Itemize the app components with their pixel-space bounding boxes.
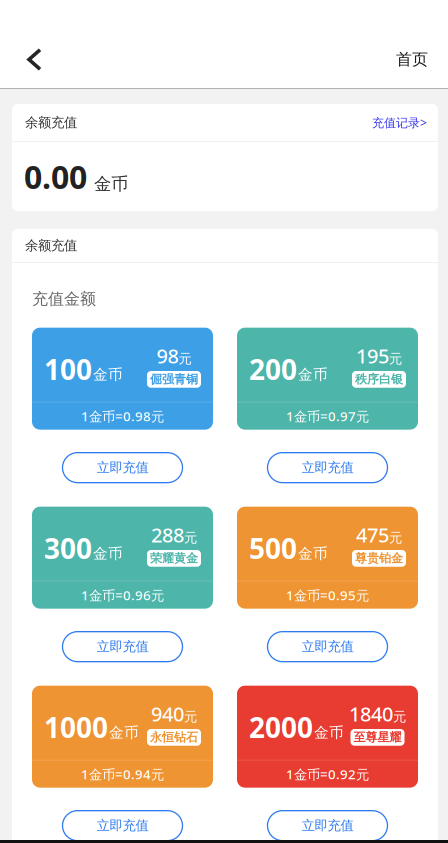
staticText: 金币 <box>93 366 123 384</box>
button[interactable]: 立即充值 <box>62 453 182 483</box>
staticText: 1金币=0.94元 <box>81 765 164 783</box>
button[interactable]: 立即充值 <box>267 453 387 483</box>
staticText: 立即充值 <box>301 638 353 655</box>
staticText: 金币 <box>93 545 123 563</box>
button[interactable]: 立即充值 <box>267 811 387 841</box>
button[interactable]: 立即充值 <box>62 632 182 662</box>
staticText: 1金币=0.92元 <box>286 765 369 783</box>
staticText: 金币 <box>94 173 128 195</box>
staticText: 金币 <box>298 366 328 384</box>
staticText: 尊贵铂金 <box>355 551 403 566</box>
staticText: 元 <box>184 709 197 725</box>
staticText: 1840 <box>349 700 393 727</box>
button[interactable]: 立即充值 <box>62 811 182 841</box>
staticText: 立即充值 <box>96 817 148 834</box>
button[interactable]: Back <box>0 37 61 88</box>
staticText: 1000 <box>44 709 108 746</box>
staticText: 永恒钻石 <box>150 730 198 745</box>
staticText: 1金币=0.95元 <box>286 586 369 604</box>
staticText: 立即充值 <box>96 638 148 655</box>
staticText: 1金币=0.97元 <box>286 407 369 425</box>
staticText: 2000 <box>249 709 313 746</box>
staticText: 元 <box>184 530 197 546</box>
staticText: 立即充值 <box>96 459 148 476</box>
button[interactable]: 立即充值 <box>267 632 387 662</box>
staticText: 288 <box>151 521 184 548</box>
staticText: 475 <box>356 521 389 548</box>
staticText: 100 <box>44 351 92 388</box>
button[interactable]: 首页 <box>396 36 448 89</box>
staticText: 倔强青铜 <box>150 372 198 387</box>
staticText: 98 <box>156 342 178 369</box>
staticText: 余额充值 <box>25 114 77 131</box>
staticText: 立即充值 <box>301 459 353 476</box>
staticText: 500 <box>249 530 297 567</box>
staticText: 元 <box>178 351 191 367</box>
staticText: 200 <box>249 351 297 388</box>
staticText: 元 <box>393 709 406 725</box>
button[interactable]: 充值记录> <box>372 114 427 130</box>
staticText: 充值金额 <box>32 289 96 309</box>
staticText: 立即充值 <box>301 817 353 834</box>
staticText: 首页 <box>396 50 428 69</box>
staticText: 0.00 <box>24 155 87 198</box>
staticText: 秩序白银 <box>355 372 403 387</box>
staticText: 金币 <box>109 724 139 742</box>
staticText: 300 <box>44 530 92 567</box>
staticText: 940 <box>151 700 184 727</box>
staticText: 元 <box>389 530 402 546</box>
staticText: 1金币=0.98元 <box>81 407 164 425</box>
staticText: 余额充值 <box>25 237 77 254</box>
staticText: 元 <box>389 351 402 367</box>
staticText: 金币 <box>314 724 344 742</box>
staticText: 金币 <box>298 545 328 563</box>
staticText: 荣耀黄金 <box>150 551 198 566</box>
staticText: 1金币=0.96元 <box>81 586 164 604</box>
staticText: 充值记录> <box>372 114 427 130</box>
staticText: 至尊星耀 <box>353 730 401 745</box>
staticText: 195 <box>356 342 389 369</box>
